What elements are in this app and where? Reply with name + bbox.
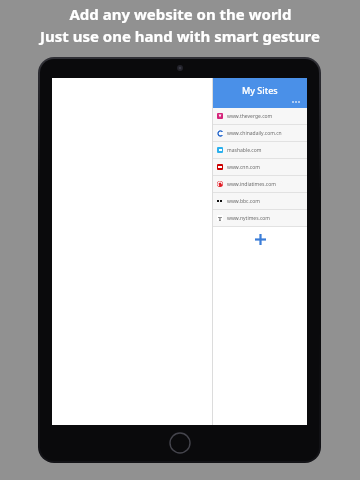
staticText: www.theverge.com bbox=[227, 113, 273, 120]
staticText: Just use one hand with smart gesture bbox=[40, 26, 320, 46]
staticText: www.cnn.com bbox=[227, 164, 260, 171]
staticText: T bbox=[218, 215, 222, 221]
button[interactable]: www.bbc.com bbox=[213, 193, 307, 209]
button[interactable]: www.theverge.com bbox=[213, 108, 307, 124]
button[interactable]: Add website bbox=[213, 227, 307, 251]
button[interactable]: T bbox=[213, 210, 307, 226]
button[interactable]: www.indiatimes.com bbox=[213, 176, 307, 192]
staticText: www.chinadaily.com.cn bbox=[227, 130, 282, 137]
staticText: My Sites bbox=[242, 84, 278, 96]
button[interactable]: My Sites bbox=[213, 78, 307, 108]
button[interactable]: More options bbox=[290, 98, 302, 106]
button[interactable]: mashable.com bbox=[213, 142, 307, 158]
button[interactable]: www.chinadaily.com.cn bbox=[213, 125, 307, 141]
staticText: www.indiatimes.com bbox=[227, 181, 276, 188]
button[interactable]: www.cnn.com bbox=[213, 159, 307, 175]
staticText: www.bbc.com bbox=[227, 198, 260, 205]
staticText: mashable.com bbox=[227, 147, 262, 154]
staticText: www.nytimes.com bbox=[227, 215, 270, 222]
staticText: Add any website on the world bbox=[69, 4, 292, 24]
